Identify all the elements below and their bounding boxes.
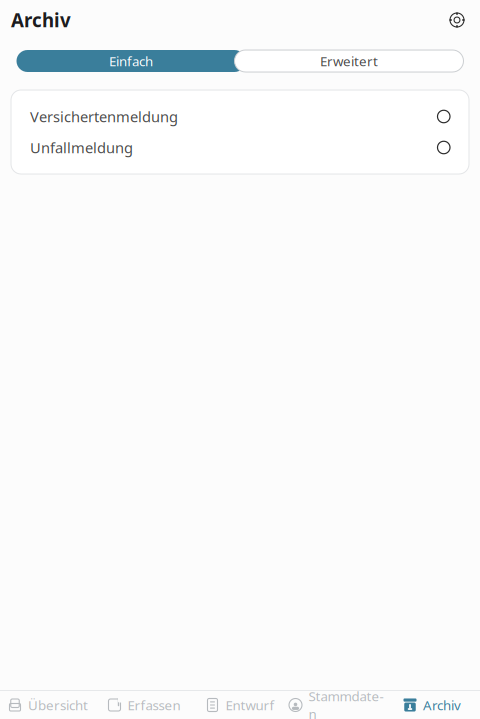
- button[interactable]: Stammdaten: [288, 690, 384, 719]
- button[interactable]: Erfassen: [96, 690, 192, 719]
- staticText: Archiv: [423, 696, 461, 714]
- button[interactable]: Einfach: [16, 50, 245, 72]
- staticText: Übersicht: [28, 696, 88, 714]
- button[interactable]: Versichertenmeldung: [11, 101, 469, 132]
- staticText: Versichertenmeldung: [30, 107, 178, 126]
- staticText: Erfassen: [127, 696, 180, 714]
- button[interactable]: Archiv: [384, 690, 480, 719]
- staticText: Entwurf: [225, 696, 274, 714]
- staticText: Archiv: [11, 8, 71, 32]
- button[interactable]: Entwurf: [192, 690, 288, 719]
- staticText: Erweitert: [320, 52, 378, 70]
- button[interactable]: Settings: [442, 5, 472, 35]
- button[interactable]: Erweitert: [234, 50, 463, 72]
- staticText: Stammdaten: [308, 687, 383, 719]
- staticText: Unfallmeldung: [30, 138, 133, 157]
- staticText: Einfach: [109, 52, 153, 70]
- button[interactable]: Übersicht: [0, 690, 96, 719]
- button[interactable]: Unfallmeldung: [11, 132, 469, 163]
